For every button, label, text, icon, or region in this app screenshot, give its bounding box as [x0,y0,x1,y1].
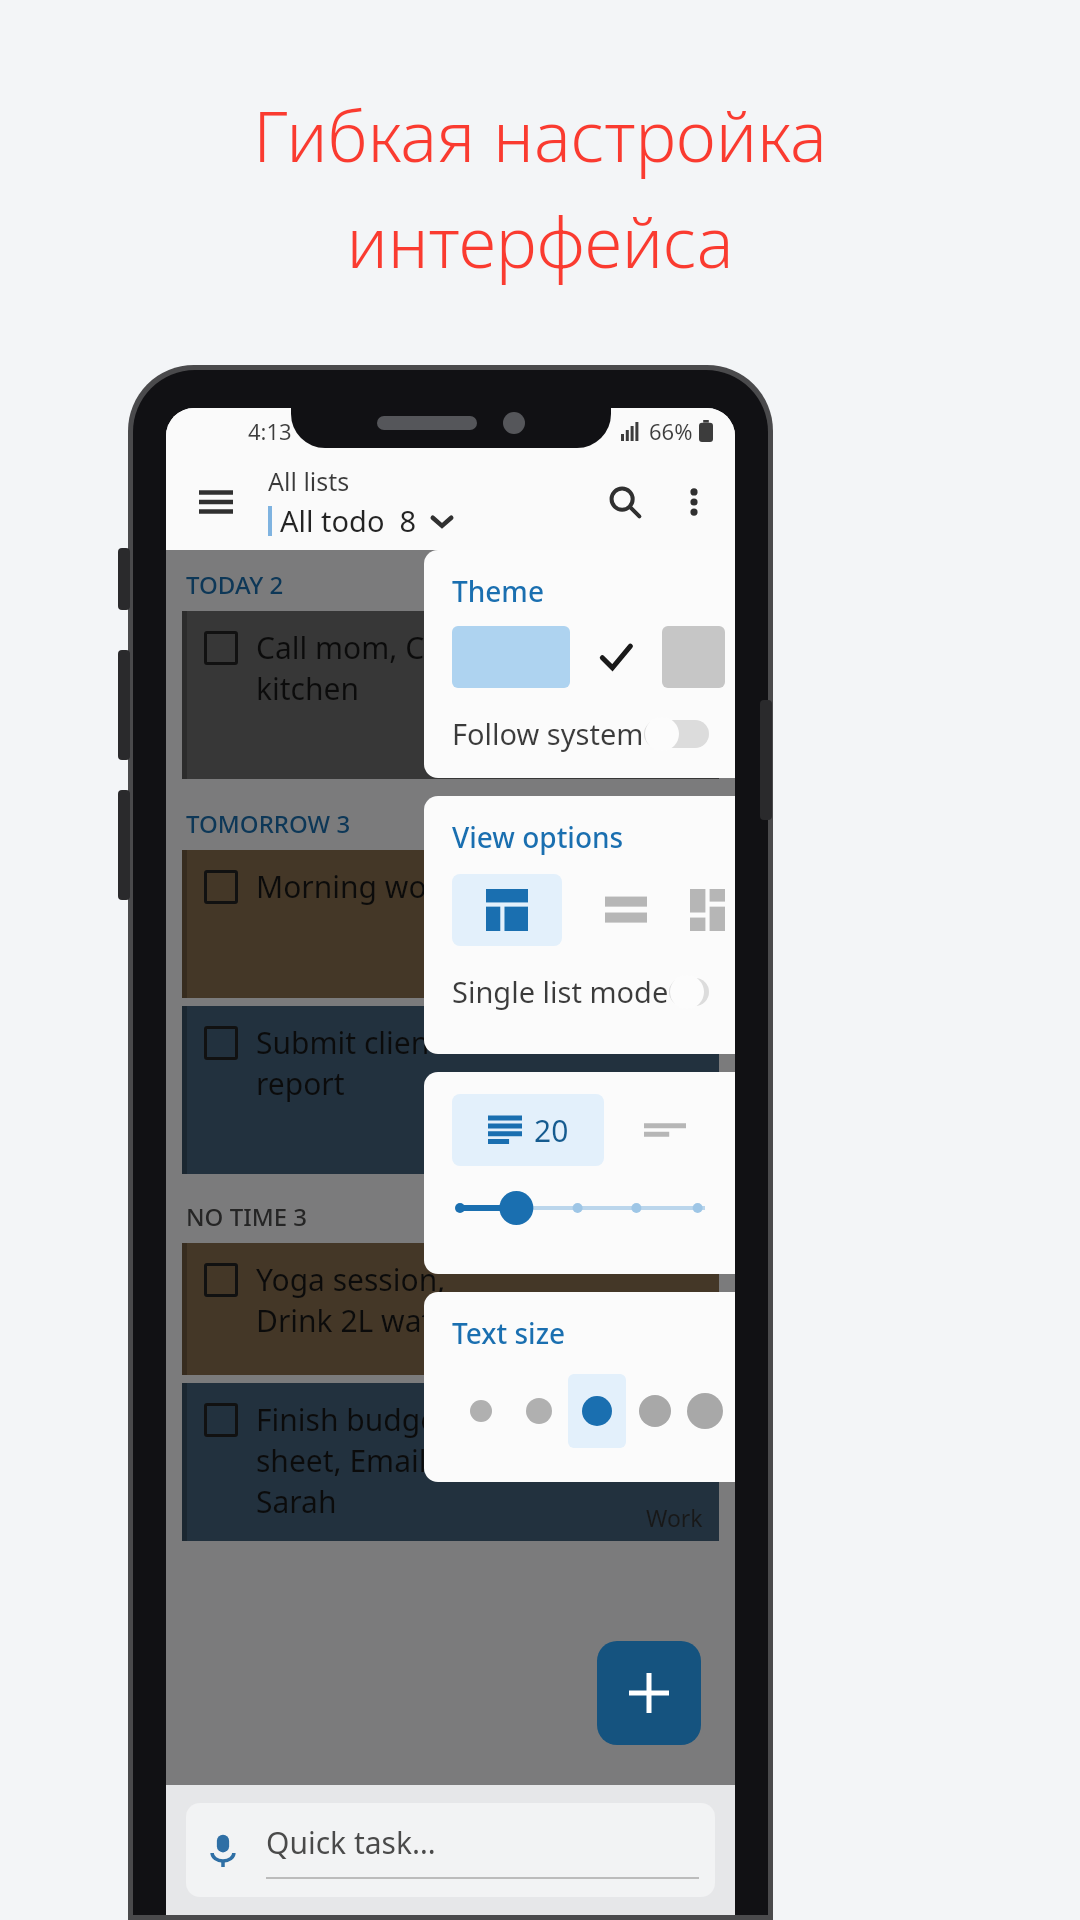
button[interactable] [590,874,662,946]
staticText: All todo 8 [280,501,417,540]
button[interactable] [452,626,570,688]
staticText: NO TIME 3 [186,1200,308,1233]
staticText: 01:00 PM [590,1065,703,1100]
button[interactable]: Quick task… [186,1803,715,1897]
staticText: View options [452,818,624,856]
staticText: Work [646,1135,703,1166]
button[interactable]: Menu [180,466,252,538]
button[interactable]: Single list mode [452,972,725,1011]
button[interactable]: Yoga session, [182,1243,719,1375]
button[interactable] [662,626,725,688]
staticText: 07:00 PM [590,670,703,705]
staticText: 66% [649,416,693,446]
button[interactable] [452,874,562,946]
button[interactable]: Finish budget [182,1383,719,1541]
button[interactable]: Morning workout [182,850,719,998]
button[interactable] [568,1374,626,1448]
button[interactable]: All lists [268,464,589,540]
button[interactable] [684,1374,725,1448]
staticText: Sarah [256,1481,337,1522]
button[interactable]: Add task [597,1641,701,1745]
staticText: 20 [534,1110,569,1151]
staticText: интерфейса [346,194,734,288]
staticText: Yoga session, [256,1259,446,1300]
staticText: Morning workout [256,866,503,907]
staticText: TODAY 2 [186,568,284,601]
button[interactable]: 20 [452,1094,604,1166]
staticText: 4:13 [248,416,292,446]
button[interactable] [626,1374,684,1448]
button[interactable]: Search [589,466,661,538]
staticText: Гибкая настройка [253,88,827,182]
staticText: Quick task… [266,1822,436,1863]
button[interactable]: More options [661,469,727,535]
button[interactable] [510,1374,568,1448]
staticText: 07:00 AM [589,889,703,924]
staticText: Call mom, Clean [256,627,485,668]
staticText: Text size [452,1314,566,1352]
staticText: In 2 hr. [620,705,703,740]
staticText: TOMORROW 3 [186,807,351,840]
staticText: Single list mode [452,972,669,1011]
staticText: Follow system [452,714,644,753]
staticText: Fitness [627,959,703,990]
button[interactable]: Follow system [452,714,725,753]
staticText: All lists [268,464,350,498]
staticText: Finish budget [256,1399,448,1440]
staticText: Drink 2L water [256,1300,462,1341]
staticText: kitchen [256,668,359,709]
button[interactable] [690,874,725,946]
button[interactable]: Call mom, Clean [182,611,719,779]
button[interactable]: Submit client [182,1006,719,1174]
staticText: report [256,1063,345,1104]
button[interactable] [452,1374,510,1448]
staticText: Work [646,1502,703,1533]
staticText: Personal [608,740,703,771]
staticText: In 14 hr. [605,924,703,959]
staticText: In 20 hr. [605,1100,703,1135]
staticText: Theme [452,572,544,610]
staticText: Submit client [256,1022,441,1063]
staticText: sheet, Email [256,1440,427,1481]
